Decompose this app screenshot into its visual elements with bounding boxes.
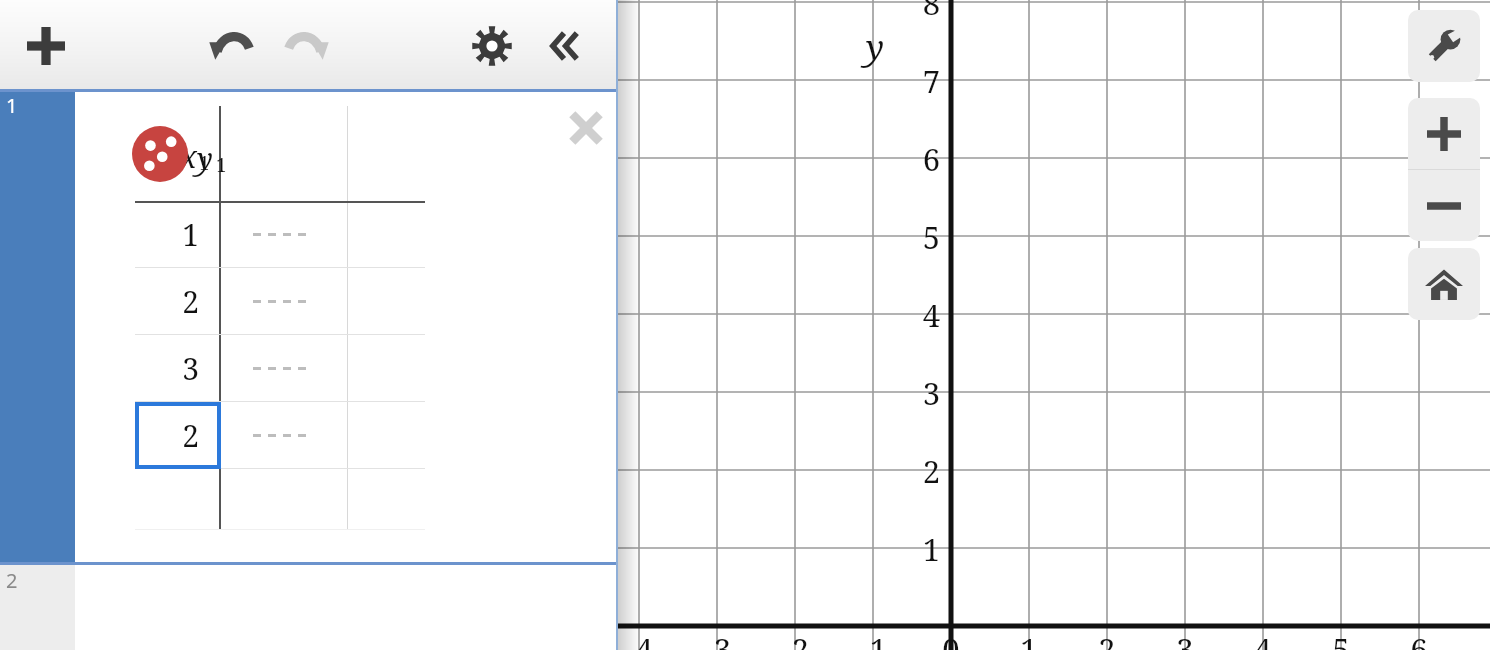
staticText: 1 — [135, 214, 199, 255]
button[interactable]: Change point style — [132, 126, 188, 182]
button[interactable]: 2 — [135, 268, 221, 335]
staticText: -4 — [626, 628, 653, 650]
button[interactable] — [219, 268, 347, 335]
staticText: 5 — [1332, 628, 1350, 650]
button[interactable]: 2 — [135, 402, 221, 469]
staticText: 1 — [6, 92, 18, 119]
button[interactable]: 3 — [135, 335, 221, 402]
staticText: 2 — [135, 415, 199, 456]
button[interactable]: Zoom in — [1408, 98, 1480, 169]
staticText: 5 — [922, 216, 940, 258]
staticText: 3 — [1176, 628, 1194, 650]
button[interactable]: 2 — [0, 565, 75, 650]
button[interactable]: Graph settings — [1408, 10, 1480, 82]
button[interactable]: Zoom out — [1408, 170, 1480, 241]
staticText: 1 — [922, 528, 940, 570]
staticText: 6 — [1410, 628, 1428, 650]
staticText: 0 — [942, 628, 960, 650]
staticText: 4 — [922, 294, 940, 336]
staticText: 1 — [199, 150, 210, 176]
button[interactable]: Redo — [278, 16, 338, 76]
staticText: y — [866, 24, 884, 70]
staticText: -3 — [704, 628, 731, 650]
button[interactable]: 1 — [0, 92, 75, 562]
staticText: 3 — [922, 372, 940, 414]
staticText: 2 — [6, 567, 18, 594]
button[interactable] — [219, 201, 347, 268]
staticText: 8 — [922, 0, 940, 24]
button[interactable]: Undo — [200, 16, 260, 76]
button[interactable]: 1 — [135, 201, 221, 268]
staticText: 2 — [135, 281, 199, 322]
button[interactable]: Settings — [462, 16, 522, 76]
staticText: -2 — [782, 628, 809, 650]
staticText: 1 — [216, 152, 227, 178]
button[interactable]: Collapse panel — [538, 16, 598, 76]
button[interactable]: Delete expression — [558, 100, 614, 156]
staticText: 2 — [1098, 628, 1116, 650]
button[interactable]: Default viewport — [1408, 248, 1480, 320]
staticText: x — [143, 136, 197, 177]
staticText: 3 — [135, 348, 199, 389]
staticText: 4 — [1254, 628, 1272, 650]
button[interactable] — [219, 402, 347, 469]
staticText: 6 — [922, 138, 940, 180]
staticText: y — [197, 138, 213, 179]
staticText: 7 — [922, 60, 940, 102]
staticText: 1 — [1020, 628, 1038, 650]
button[interactable] — [219, 335, 347, 402]
button[interactable]: Add expression — [16, 16, 76, 76]
staticText: -1 — [860, 628, 887, 650]
staticText: 2 — [922, 450, 940, 492]
